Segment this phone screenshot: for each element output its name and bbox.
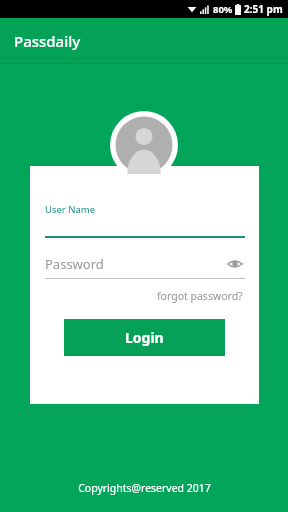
staticText: Password [45, 255, 225, 273]
staticText: Copyrights@reserved 2017 [78, 481, 211, 495]
button[interactable]: User Name [45, 203, 245, 238]
staticText: Passdaily [14, 31, 81, 51]
staticText: 80% [213, 3, 233, 16]
button[interactable]: Password [45, 254, 245, 279]
button[interactable]: Login [64, 319, 225, 356]
button[interactable]: forgot password? [155, 287, 245, 305]
button[interactable]: Show password [225, 254, 245, 274]
other: Profile avatar [110, 111, 178, 179]
staticText: User Name [45, 203, 96, 216]
staticText: 2:51 pm [244, 2, 283, 16]
staticText: forgot password? [157, 289, 243, 303]
staticText: Login [125, 328, 164, 347]
